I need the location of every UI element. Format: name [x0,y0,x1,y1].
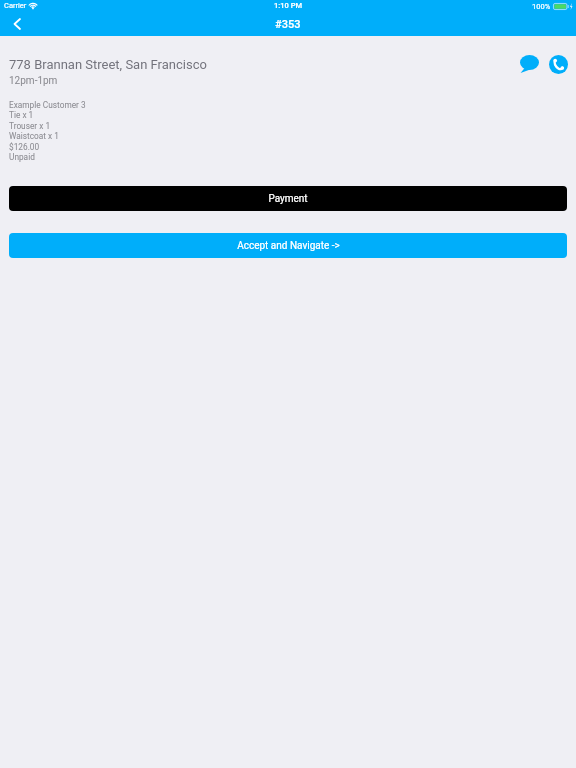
staticText: Accept and Navigate -> [237,240,340,252]
staticText: 778 Brannan Street, San Francisco [9,57,207,72]
staticText: 12pm-1pm [9,75,58,87]
button[interactable]: Payment [9,186,567,211]
staticText: Unpaid [9,152,35,162]
staticText: Trouser x 1 [9,121,51,131]
staticText: Tie x 1 [9,110,34,120]
staticText: Payment [268,193,308,205]
staticText: 1:10 PM [274,1,303,10]
button[interactable]: Message [516,52,542,76]
button[interactable]: Back [5,14,29,34]
staticText: $126.00 [9,142,40,152]
staticText: Waistcoat x 1 [9,131,59,141]
button[interactable]: Accept and Navigate -> [9,233,567,258]
button[interactable]: Call [546,52,570,76]
staticText: #353 [275,18,301,31]
staticText: Carrier [4,1,27,10]
staticText: Example Customer 3 [9,100,86,110]
staticText: 100% [532,2,551,11]
